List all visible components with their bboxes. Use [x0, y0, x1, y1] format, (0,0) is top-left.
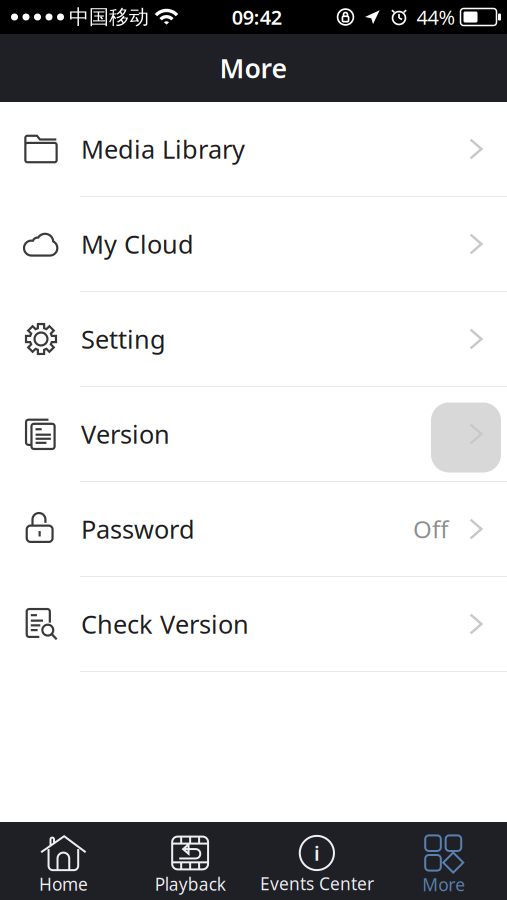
button[interactable]: Setting — [0, 292, 507, 386]
button[interactable]: More — [380, 822, 507, 900]
staticText: Version — [81, 417, 170, 451]
staticText: Media Library — [81, 132, 245, 166]
staticText: Home — [39, 872, 88, 895]
staticText: More — [422, 873, 465, 896]
button[interactable]: Playback — [127, 822, 254, 900]
staticText: More — [219, 50, 287, 86]
staticText: My Cloud — [81, 227, 194, 261]
button[interactable]: Media Library — [0, 102, 507, 196]
button[interactable]: Home — [0, 822, 127, 900]
button[interactable]: Password — [0, 482, 507, 576]
button[interactable]: My Cloud — [0, 197, 507, 291]
staticText: Setting — [81, 322, 166, 356]
staticText: i — [314, 840, 320, 866]
staticText: 中国移动 — [69, 5, 149, 29]
button[interactable]: Check Version — [0, 577, 507, 671]
button[interactable]: i — [253, 822, 380, 900]
staticText: Off — [413, 513, 449, 545]
staticText: Password — [81, 512, 195, 546]
staticText: 44% — [416, 4, 455, 30]
staticText: Playback — [155, 872, 226, 895]
button[interactable]: Version — [0, 387, 507, 481]
staticText: Check Version — [81, 607, 249, 641]
staticText: 09:42 — [232, 4, 282, 30]
staticText: Events Center — [260, 872, 374, 895]
